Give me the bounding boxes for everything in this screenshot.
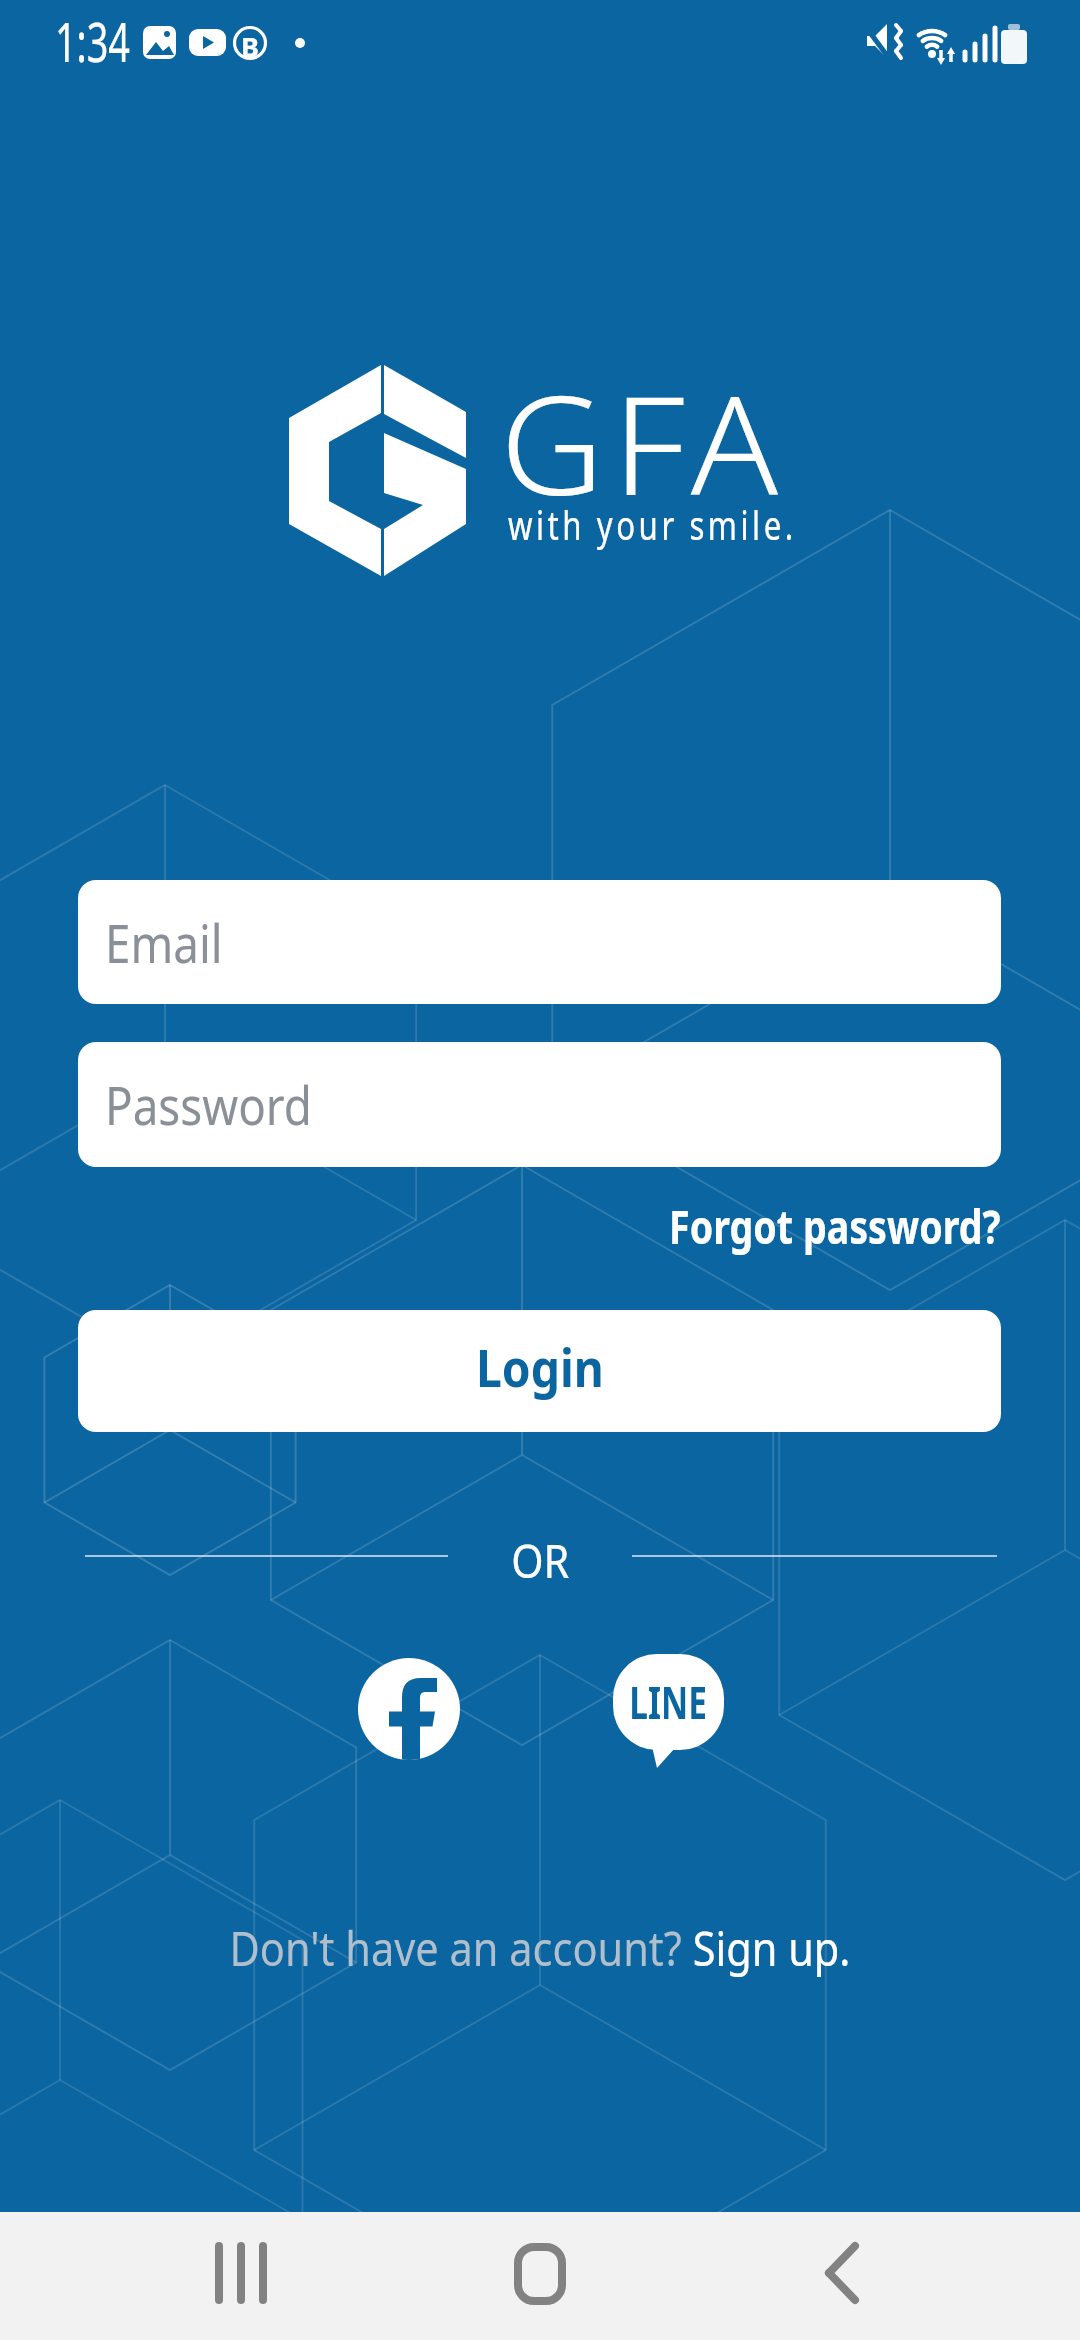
staticText: LINE bbox=[629, 1672, 708, 1732]
staticText: with your smile. bbox=[508, 497, 797, 551]
staticText: B bbox=[241, 28, 259, 58]
staticText: Login bbox=[476, 1331, 604, 1402]
staticText: 1:34 bbox=[55, 4, 131, 78]
staticText: Email bbox=[105, 907, 223, 978]
staticText: Password bbox=[105, 1069, 313, 1140]
button[interactable] bbox=[358, 1658, 460, 1760]
button[interactable]: Login bbox=[78, 1310, 1001, 1432]
button[interactable]: Email bbox=[78, 880, 1001, 1004]
button[interactable]: LINE bbox=[613, 1654, 724, 1774]
staticText: Forgot password? bbox=[669, 1194, 1001, 1258]
staticText: Don't have an account? Sign up. bbox=[229, 1915, 851, 1980]
button[interactable]: Password bbox=[78, 1042, 1001, 1167]
staticText: OR bbox=[511, 1529, 570, 1592]
button[interactable]: Forgot password? bbox=[78, 1183, 1001, 1268]
staticText: GFA bbox=[500, 349, 787, 536]
button[interactable]: Don't have an account? Sign up. bbox=[0, 1905, 1080, 1990]
